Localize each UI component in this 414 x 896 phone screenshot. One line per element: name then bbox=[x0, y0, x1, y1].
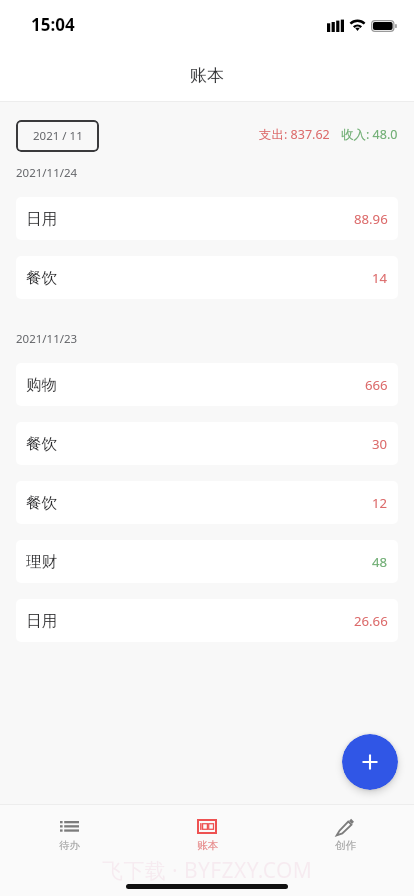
staticText: 日用 bbox=[26, 611, 57, 631]
staticText: 14 bbox=[372, 269, 388, 287]
staticText: 餐饮 bbox=[26, 268, 57, 288]
staticText: 88.96 bbox=[354, 210, 388, 228]
button[interactable]: 待办 bbox=[0, 817, 138, 855]
staticText: 15:04 bbox=[31, 13, 75, 36]
staticText: 餐饮 bbox=[26, 434, 57, 454]
button[interactable]: Add bbox=[342, 734, 398, 790]
button[interactable]: 购物 bbox=[16, 363, 398, 406]
staticText: 飞下载 · BYFZXY.COM bbox=[102, 856, 313, 885]
staticText: 账本 bbox=[197, 839, 218, 852]
button[interactable]: 餐饮 bbox=[16, 481, 398, 524]
staticText: 收入: 48.0 bbox=[341, 126, 398, 143]
staticText: 支出: 837.62 bbox=[259, 126, 330, 143]
button[interactable]: 账本 bbox=[138, 817, 276, 855]
staticText: 账本 bbox=[190, 65, 224, 86]
staticText: 2021 / 11 bbox=[33, 128, 83, 144]
button[interactable]: 餐饮 bbox=[16, 256, 398, 299]
button[interactable]: 餐饮 bbox=[16, 422, 398, 465]
staticText: 2021/11/24 bbox=[16, 165, 78, 181]
staticText: 日用 bbox=[26, 209, 57, 229]
staticText: 餐饮 bbox=[26, 493, 57, 513]
button[interactable]: 日用 bbox=[16, 197, 398, 240]
staticText: 理财 bbox=[26, 552, 57, 572]
staticText: 666 bbox=[365, 376, 388, 394]
staticText: 购物 bbox=[26, 375, 57, 395]
button[interactable]: 理财 bbox=[16, 540, 398, 583]
button[interactable]: 2021 / 11 bbox=[16, 120, 99, 152]
staticText: 12 bbox=[372, 494, 388, 512]
button[interactable]: 日用 bbox=[16, 599, 398, 642]
button[interactable]: 创作 bbox=[276, 817, 414, 855]
staticText: 2021/11/23 bbox=[16, 331, 78, 347]
staticText: 26.66 bbox=[354, 612, 388, 630]
staticText: 48 bbox=[372, 553, 388, 571]
staticText: 创作 bbox=[335, 839, 356, 852]
staticText: 30 bbox=[372, 435, 388, 453]
staticText: 待办 bbox=[59, 839, 80, 852]
